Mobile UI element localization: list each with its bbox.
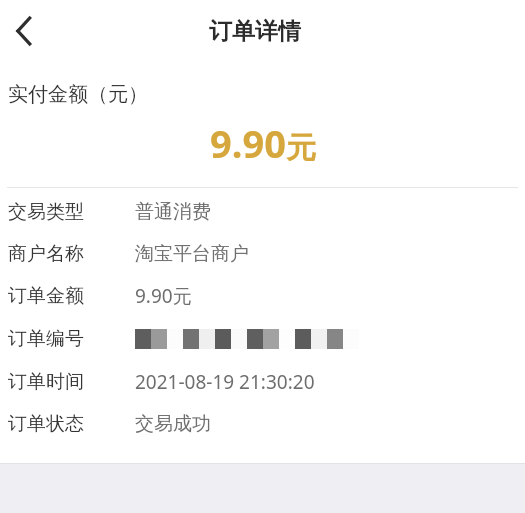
staticText: 9.90元 xyxy=(135,283,192,309)
staticText: 订单编号 xyxy=(8,327,84,351)
button[interactable]: 商户名称 xyxy=(0,233,525,275)
staticText: 订单状态 xyxy=(8,412,84,436)
staticText: 9.90 xyxy=(210,117,286,169)
staticText: 订单时间 xyxy=(8,370,84,394)
staticText: 淘宝平台商户 xyxy=(135,242,249,266)
staticText: 元 xyxy=(286,129,316,167)
button[interactable]: Back xyxy=(0,7,48,55)
staticText: 商户名称 xyxy=(8,242,84,266)
staticText: 订单详情 xyxy=(209,17,301,46)
staticText: 普通消费 xyxy=(135,200,211,224)
staticText: 2021-08-19 21:30:20 xyxy=(135,369,315,395)
button[interactable]: 交易类型 xyxy=(0,191,525,233)
button[interactable]: 订单时间 xyxy=(0,361,525,403)
staticText: 交易类型 xyxy=(8,200,84,224)
staticText: 实付金额（元） xyxy=(8,82,148,107)
staticText: 交易成功 xyxy=(135,412,211,436)
staticText: 订单金额 xyxy=(8,284,84,308)
button[interactable]: 订单金额 xyxy=(0,275,525,317)
button[interactable]: 订单状态 xyxy=(0,403,525,445)
button[interactable]: 订单编号 xyxy=(0,317,525,361)
